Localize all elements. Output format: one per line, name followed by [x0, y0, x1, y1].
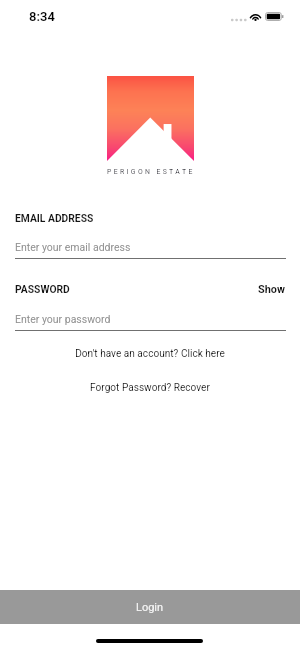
other: Cellular signal	[231, 15, 246, 24]
staticText: Enter your email address	[15, 241, 131, 253]
button[interactable]: Login	[0, 590, 300, 624]
button[interactable]: Show	[252, 279, 279, 292]
staticText: EMAIL ADDRESS	[15, 212, 94, 224]
other: Battery	[265, 12, 284, 21]
staticText: Don't have an account? Click here	[75, 348, 225, 360]
staticText: 8:34	[29, 9, 55, 24]
staticText: Enter your password	[15, 313, 111, 325]
button[interactable]: Don't have an account? Click here	[75, 346, 225, 358]
staticText: Forgot Password? Recover	[90, 382, 210, 394]
staticText: PASSWORD	[15, 283, 70, 295]
other: Wi-Fi	[249, 12, 262, 21]
button[interactable]: Enter your email address	[15, 238, 286, 259]
button[interactable]: Enter your password	[15, 310, 286, 331]
button[interactable]: Forgot Password? Recover	[90, 380, 210, 392]
staticText: P E R I G O N E S T A T E	[107, 168, 193, 176]
staticText: Login	[136, 601, 164, 614]
staticText: Show	[258, 283, 285, 296]
